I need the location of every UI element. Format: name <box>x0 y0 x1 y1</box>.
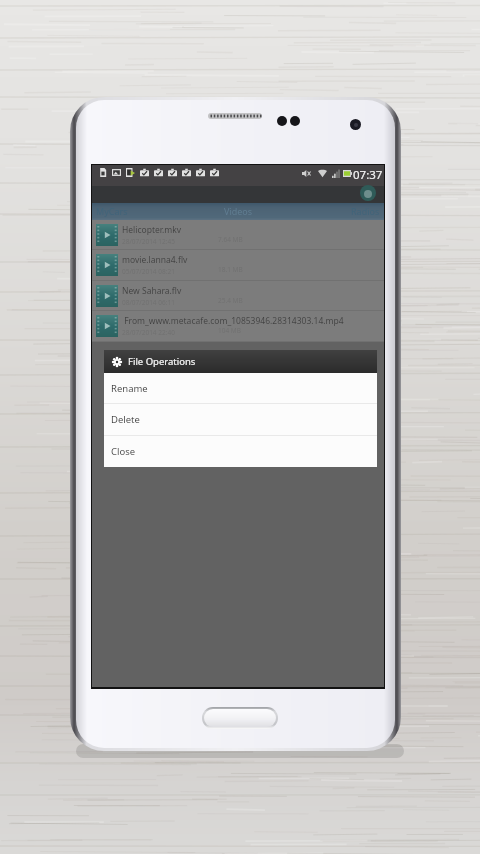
button[interactable]: Helicopter.mkv <box>92 220 384 249</box>
button[interactable]: Close <box>104 436 377 467</box>
button[interactable]: From_www.metacafe.com_10853946.28314303.… <box>92 311 384 341</box>
staticText: Helicopter.mkv <box>122 224 182 236</box>
staticText: New Sahara.flv <box>122 285 182 297</box>
button[interactable]: Rename <box>104 373 377 403</box>
staticText: From_www.metacafe.com_10853946.28314303.… <box>122 315 344 327</box>
staticText: Videos <box>224 205 253 217</box>
staticText: MyCars <box>96 205 128 217</box>
button[interactable]: MyCars <box>92 203 190 220</box>
staticText: Delete <box>111 413 140 426</box>
button[interactable]: App <box>360 185 376 201</box>
button[interactable]: Delete <box>104 404 377 435</box>
button[interactable]: Radios <box>287 203 384 220</box>
other: File operations <box>112 357 122 367</box>
staticText: 07:37 <box>353 167 383 183</box>
button[interactable]: movie.lanna4.flv <box>92 250 384 280</box>
staticText: File Operations <box>128 355 196 368</box>
button[interactable]: File operations <box>104 350 377 373</box>
staticText: movie.lanna4.flv <box>122 254 188 266</box>
button[interactable]: New Sahara.flv <box>92 281 384 310</box>
button[interactable]: Videos <box>190 203 287 220</box>
staticText: Rename <box>111 382 148 395</box>
staticText: Radios <box>351 205 380 217</box>
staticText: Close <box>111 445 136 458</box>
